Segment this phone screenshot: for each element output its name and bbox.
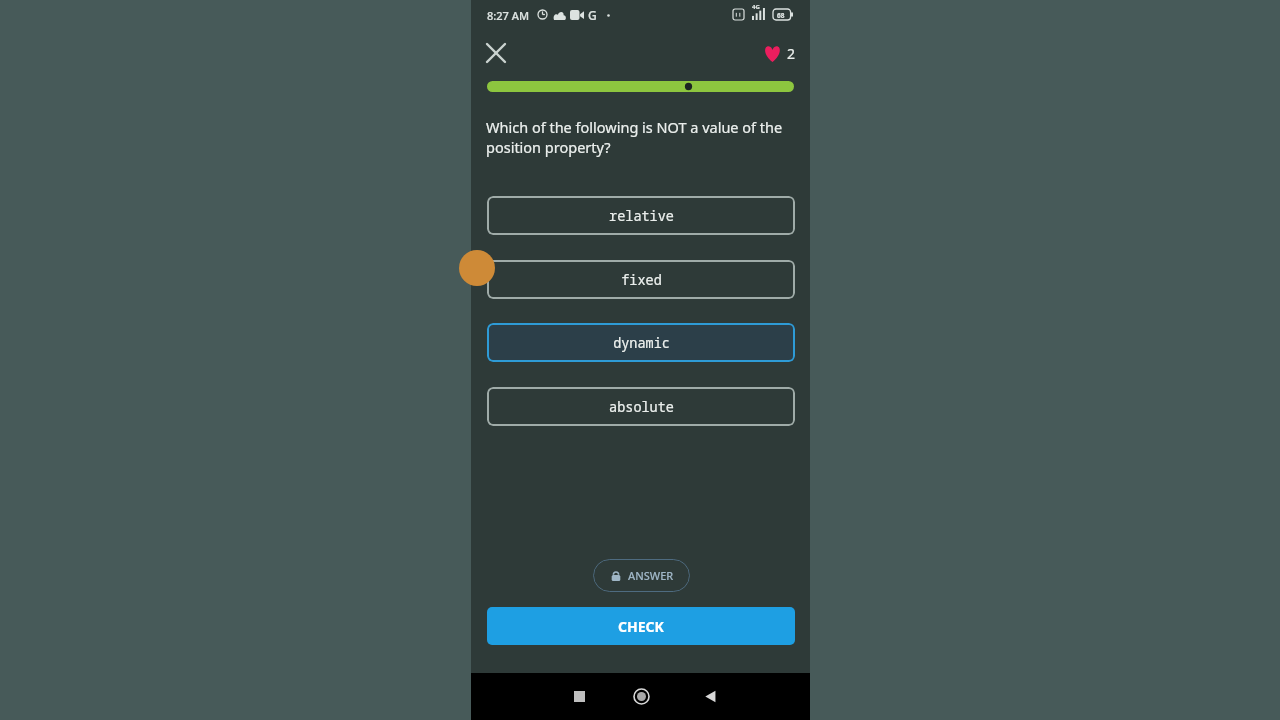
button[interactable]: Home (621, 673, 661, 720)
button[interactable]: Back (690, 673, 730, 720)
staticText: fixed (621, 271, 662, 289)
button[interactable]: ANSWER (593, 559, 690, 592)
staticText: relative (609, 207, 674, 225)
staticText: ANSWER (628, 568, 674, 583)
staticText: 2 (787, 44, 796, 63)
button[interactable]: dynamic (487, 323, 795, 362)
staticText: 8:27 AM (487, 8, 530, 23)
staticText: G (588, 7, 597, 23)
button[interactable]: Recents (559, 673, 599, 720)
button[interactable]: fixed (487, 260, 795, 299)
staticText: 68 (777, 11, 785, 20)
button[interactable]: absolute (487, 387, 795, 426)
button[interactable]: relative (487, 196, 795, 235)
button[interactable]: CHECK (487, 607, 795, 645)
staticText: absolute (609, 398, 674, 416)
staticText: CHECK (618, 617, 664, 636)
staticText: Which of the following is NOT a value of… (486, 117, 786, 157)
button[interactable]: Close (479, 36, 513, 70)
button[interactable]: 2 (763, 44, 796, 63)
staticText: 4G (752, 3, 760, 11)
staticText: dynamic (613, 334, 670, 352)
